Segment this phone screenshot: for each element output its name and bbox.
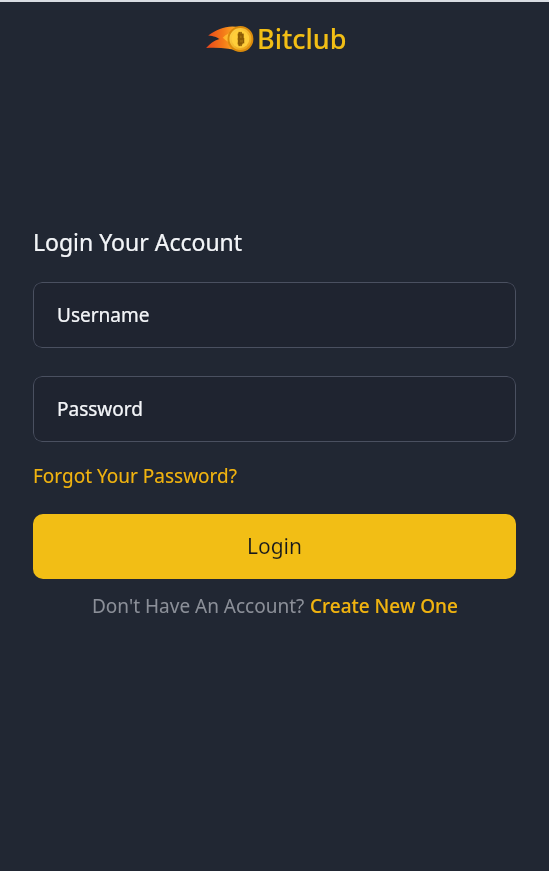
staticText: Bitclub [257,20,347,57]
button[interactable]: Login [33,514,516,579]
button[interactable]: Create New One [310,593,458,619]
staticText: Username [57,302,150,328]
staticText: Don't Have An Account? [92,593,310,619]
button[interactable]: Forgot Your Password? [33,463,238,489]
staticText: Login [247,532,303,561]
staticText: Forgot Your Password? [33,463,238,489]
button[interactable]: Username [33,282,516,348]
staticText: Login Your Account [33,226,243,257]
button[interactable]: Password [33,376,516,442]
staticText: Password [57,396,143,422]
staticText: Create New One [310,593,458,619]
